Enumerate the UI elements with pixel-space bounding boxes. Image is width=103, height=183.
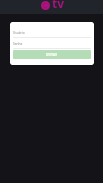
button[interactable]: Otv logo bbox=[41, 0, 65, 14]
button[interactable]: Usuário bbox=[13, 29, 91, 37]
staticText: Senha bbox=[13, 42, 23, 46]
button[interactable]: Senha bbox=[13, 40, 91, 48]
staticText: Usuário bbox=[13, 31, 25, 35]
button[interactable]: ENTRAR bbox=[13, 50, 91, 59]
staticText: tv bbox=[52, 0, 65, 9]
staticText: ENTRAR bbox=[46, 53, 58, 57]
